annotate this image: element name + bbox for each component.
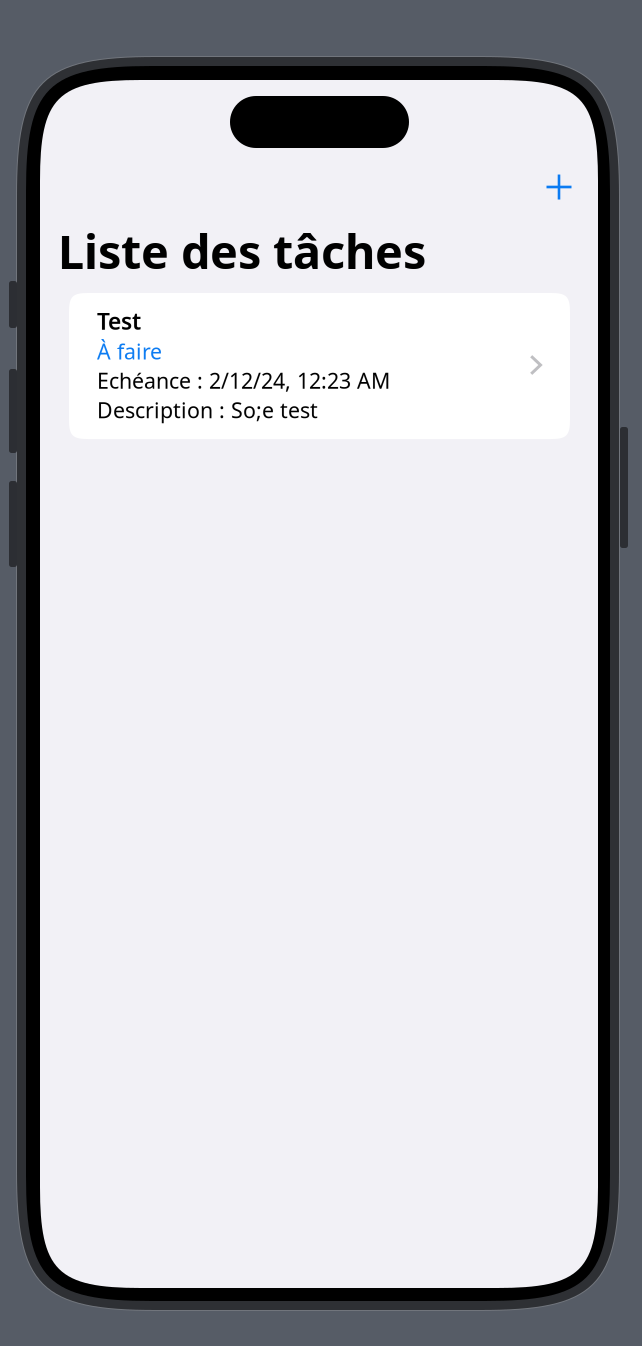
staticText: Echéance : 2/12/24, 12:23 AM [97,366,390,395]
staticText: Liste des tâches [58,220,426,282]
button[interactable]: Test [69,293,570,439]
button[interactable]: Ajouter une tâche [536,164,582,210]
staticText: Description : So;e test [97,396,318,424]
staticText: À faire [97,337,162,365]
staticText: Test [97,306,141,336]
